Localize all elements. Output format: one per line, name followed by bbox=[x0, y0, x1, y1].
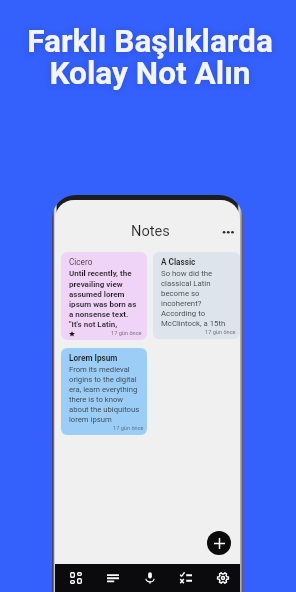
staticText: Lorem Ipsum bbox=[69, 353, 118, 363]
staticText: 17 gün önce bbox=[111, 330, 142, 337]
button[interactable]: A Classic bbox=[153, 252, 240, 339]
staticText: 17 gün önce bbox=[113, 425, 144, 432]
staticText: 17 gün önce bbox=[205, 329, 236, 336]
button[interactable]: Lorem Ipsum bbox=[61, 348, 147, 435]
staticText: From its medieval origins to the digital… bbox=[69, 365, 144, 424]
button[interactable]: Widgets bbox=[62, 564, 90, 592]
button[interactable]: Notes list bbox=[99, 564, 127, 592]
staticText: Farklı Başlıklarda Kolay Not Alın bbox=[8, 23, 292, 92]
staticText: Cicero bbox=[69, 257, 93, 267]
button[interactable]: Settings bbox=[209, 564, 237, 592]
staticText: A Classic bbox=[161, 257, 196, 267]
staticText: Notes bbox=[131, 222, 170, 239]
staticText: Until recently, the prevailing view assu… bbox=[69, 269, 142, 329]
button[interactable]: Voice recording bbox=[136, 564, 164, 592]
button[interactable]: Cicero bbox=[61, 252, 147, 340]
button[interactable]: Checklist bbox=[172, 564, 200, 592]
button[interactable]: Add note bbox=[207, 531, 231, 555]
staticText: So how did the classical Latin become so… bbox=[161, 269, 236, 328]
button[interactable]: More options bbox=[219, 221, 237, 239]
